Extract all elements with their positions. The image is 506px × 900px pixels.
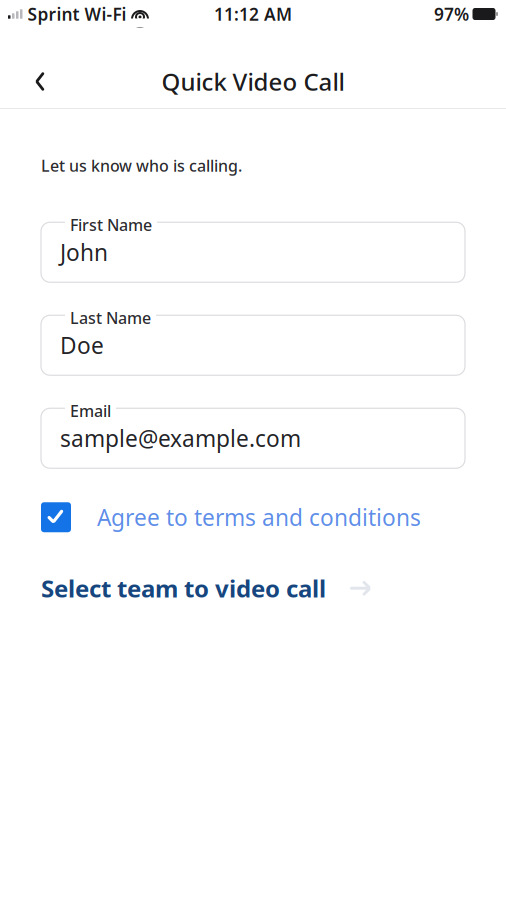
button[interactable]: Agree to terms and conditions bbox=[41, 495, 465, 539]
staticText: 97% bbox=[434, 2, 469, 25]
staticText: sample@example.com bbox=[60, 423, 301, 453]
button[interactable]: Back bbox=[18, 59, 62, 103]
staticText: Email bbox=[70, 400, 111, 421]
staticText: Quick Video Call bbox=[161, 66, 344, 97]
staticText: Select team to video call bbox=[41, 572, 326, 604]
staticText: Let us know who is calling. bbox=[41, 155, 242, 176]
button[interactable]: Select team to video call bbox=[41, 568, 465, 608]
staticText: John bbox=[60, 237, 108, 267]
staticText: Sprint Wi-Fi bbox=[27, 2, 126, 25]
staticText: Doe bbox=[60, 330, 104, 360]
staticText: Last Name bbox=[70, 307, 151, 328]
staticText: First Name bbox=[70, 214, 152, 235]
staticText: Agree to terms and conditions bbox=[97, 502, 421, 532]
staticText: 11:12 AM bbox=[214, 2, 292, 25]
